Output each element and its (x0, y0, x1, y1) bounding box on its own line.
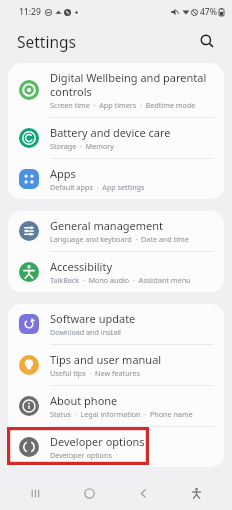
staticText: Storage · Memory (50, 141, 114, 151)
staticText: Apps (50, 166, 76, 181)
staticText: General management (50, 218, 164, 233)
staticText: 11:29 (19, 6, 41, 18)
staticText: Language and keyboard · Date and time (50, 234, 189, 244)
button[interactable]: Developer options (8, 427, 224, 467)
staticText: Digital Wellbeing and parental controls (50, 70, 214, 99)
button[interactable]: Battery and device care (8, 118, 224, 158)
staticText: Screen time · App timers · Bedtime mode (50, 100, 196, 110)
staticText: Software update (50, 311, 136, 326)
staticText: 47% (200, 6, 217, 18)
button[interactable]: General management (8, 211, 224, 251)
staticText: Developer options (50, 434, 145, 449)
staticText: Tips and user manual (50, 352, 162, 367)
staticText: TalkBack · Mono audio · Assistant menu (50, 275, 191, 285)
button[interactable]: Apps (8, 159, 224, 199)
button[interactable]: Recents (18, 476, 54, 510)
staticText: Download and install (50, 327, 121, 337)
button[interactable]: Home (71, 476, 107, 510)
staticText: About phone (50, 393, 118, 408)
button[interactable]: Digital Wellbeing and parental controls (8, 63, 224, 117)
button[interactable]: Search (194, 28, 220, 54)
staticText: Default apps · App settings (50, 182, 145, 192)
staticText: Battery and device care (50, 125, 171, 140)
button[interactable]: Software update (8, 304, 224, 344)
button[interactable]: Tips and user manual (8, 345, 224, 385)
staticText: Developer options (50, 450, 112, 460)
staticText: Settings (17, 31, 76, 52)
staticText: Useful tips · New features (50, 368, 140, 378)
button[interactable]: About phone (8, 386, 224, 426)
button[interactable]: Accessibility (178, 476, 214, 510)
staticText: Accessibility (50, 259, 113, 274)
staticText: Status · Legal information · Phone name (50, 409, 193, 419)
button[interactable]: Accessibility (8, 252, 224, 292)
button[interactable]: Back (125, 476, 161, 510)
